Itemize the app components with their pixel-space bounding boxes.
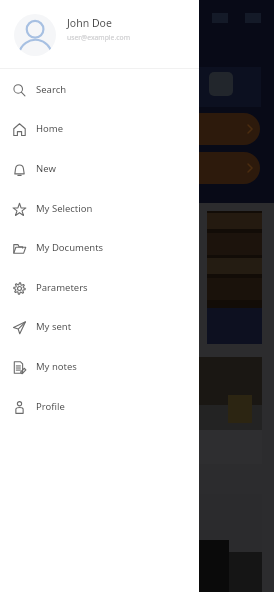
staticText: New (36, 162, 56, 175)
staticText: user@example.com (67, 33, 130, 42)
staticText: My notes (36, 360, 77, 373)
button[interactable]: John Doe (0, 0, 199, 68)
staticText: Home (36, 122, 64, 135)
button[interactable]: My sent (0, 307, 199, 347)
staticText: Profile (36, 400, 65, 413)
button[interactable]: My Selection (0, 189, 199, 229)
staticText: My Documents (36, 241, 104, 254)
staticText: Parameters (36, 281, 88, 294)
staticText: John Doe (67, 16, 112, 30)
staticText: Search (36, 83, 67, 96)
staticText: My sent (36, 320, 72, 333)
staticText: My Selection (36, 202, 93, 215)
button[interactable]: Profile (0, 387, 199, 427)
button[interactable]: Search (0, 70, 199, 110)
button[interactable]: New (0, 149, 199, 189)
button[interactable]: My notes (0, 347, 199, 387)
button[interactable]: Home (0, 109, 199, 149)
button[interactable]: Parameters (0, 268, 199, 308)
button[interactable]: My Documents (0, 228, 199, 268)
